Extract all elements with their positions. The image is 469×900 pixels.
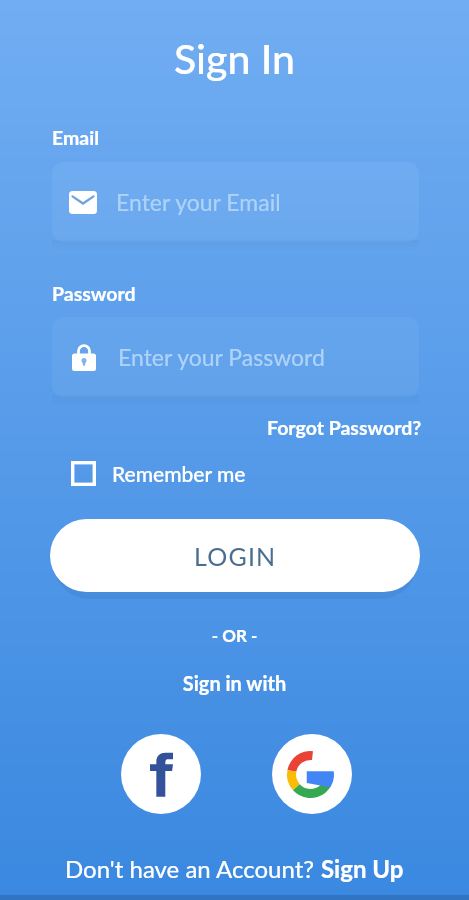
staticText: Remember me [112,461,246,486]
button[interactable]: Enter your Password [52,317,419,397]
staticText: LOGIN [194,541,277,571]
staticText: Email [52,126,100,149]
button[interactable]: Don't have an Account? [65,854,404,883]
staticText: Password [52,282,136,305]
button[interactable]: Remember me [68,458,249,489]
staticText: Don't have an Account? [65,854,321,883]
staticText: Sign Up [321,854,404,883]
staticText: Enter your Password [118,343,325,371]
button[interactable]: LOGIN [50,519,420,592]
button[interactable]: Sign in with Google [272,734,352,814]
staticText: - OR - [0,625,469,645]
button[interactable]: Forgot Password? [267,416,422,439]
button[interactable]: Enter your Email [52,162,419,242]
staticText: Forgot Password? [267,416,422,439]
staticText: Sign in with [0,671,469,695]
staticText: Enter your Email [116,188,281,216]
staticText: Sign In [0,34,469,83]
button[interactable]: Sign in with Facebook [121,734,201,814]
